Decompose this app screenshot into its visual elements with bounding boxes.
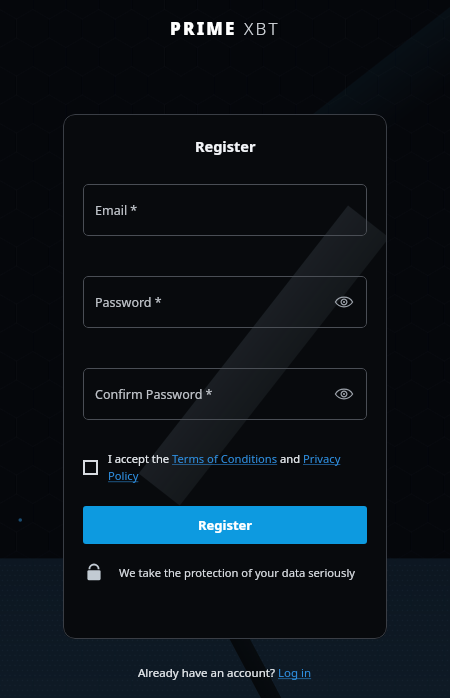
staticText: Register bbox=[198, 516, 253, 534]
button[interactable]: Confirm Password * bbox=[83, 368, 367, 420]
button[interactable]: Accept terms checkbox bbox=[83, 451, 367, 484]
button[interactable]: Register bbox=[83, 506, 367, 544]
staticText: Password * bbox=[95, 294, 162, 311]
staticText: Already have an account? bbox=[138, 665, 278, 681]
staticText: PRIME bbox=[170, 17, 237, 40]
button[interactable]: Show password bbox=[331, 381, 357, 407]
staticText: We take the protection of your data seri… bbox=[119, 565, 355, 580]
staticText: Email * bbox=[95, 202, 138, 219]
button[interactable]: Show password bbox=[331, 289, 357, 315]
staticText: Confirm Password * bbox=[95, 386, 213, 403]
button[interactable]: Log in bbox=[278, 665, 312, 681]
staticText: I accept the Terms of Conditions and Pri… bbox=[108, 451, 367, 484]
staticText: Log in bbox=[278, 665, 312, 681]
staticText: Register bbox=[195, 136, 256, 156]
other: Secure bbox=[83, 561, 105, 583]
button[interactable]: Password * bbox=[83, 276, 367, 328]
staticText: XBT bbox=[244, 17, 280, 40]
button[interactable]: Email * bbox=[83, 184, 367, 236]
other: Accept terms checkbox bbox=[83, 460, 98, 475]
